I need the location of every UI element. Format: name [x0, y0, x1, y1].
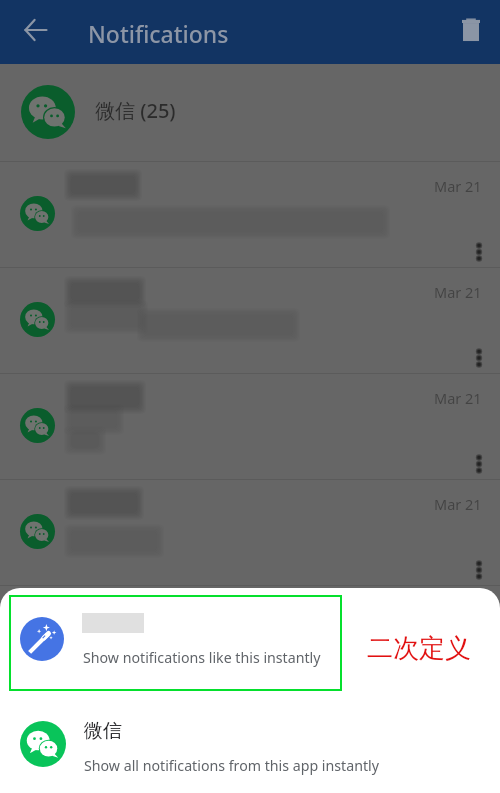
button[interactable]: Mar 21	[0, 268, 500, 374]
staticText: 二次定义	[367, 632, 471, 665]
button[interactable]: 微信	[0, 691, 500, 793]
staticText: Show notifications like this instantly	[83, 648, 321, 667]
button[interactable]: Mar 21	[0, 374, 500, 480]
staticText: Show all notifications from this app ins…	[84, 756, 379, 775]
button[interactable]: Back	[12, 6, 60, 54]
button[interactable]: More options	[459, 232, 499, 272]
button[interactable]: Delete all	[447, 6, 495, 54]
staticText: Notifications	[88, 18, 229, 49]
staticText: 微信	[84, 719, 122, 743]
staticText: 微信 (25)	[95, 97, 176, 124]
button[interactable]: More options	[459, 550, 499, 590]
button[interactable]: Show notifications like this instantly	[9, 595, 342, 691]
staticText: Mar 21	[434, 282, 482, 302]
staticText: Mar 21	[434, 388, 482, 408]
button[interactable]: More options	[459, 444, 499, 484]
button[interactable]: Mar 21	[0, 480, 500, 586]
staticText: Mar 21	[434, 176, 482, 196]
button[interactable]: Mar 21	[0, 162, 500, 268]
button[interactable]: More options	[459, 338, 499, 378]
staticText: Mar 21	[434, 494, 482, 514]
